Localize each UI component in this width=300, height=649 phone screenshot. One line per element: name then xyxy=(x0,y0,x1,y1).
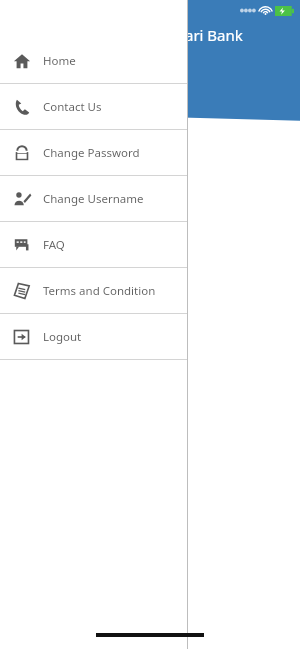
staticText: Logout xyxy=(43,329,82,345)
staticText: PARSHOTAMBHAI SONDARVA xyxy=(16,95,120,105)
button[interactable]: FAQ xyxy=(0,222,188,267)
staticText: Change Password xyxy=(43,145,140,161)
staticText: Detailed Statement xyxy=(126,309,175,337)
staticText: Amreli Nagrik Sahakari Bank xyxy=(42,25,243,45)
staticText: AMITKUMAR xyxy=(16,83,61,93)
button[interactable]: Contact Us xyxy=(0,84,188,129)
staticText: FAQ xyxy=(43,237,65,253)
staticText: Terms and Condition xyxy=(43,283,156,299)
button[interactable]: Change Username xyxy=(0,176,188,221)
button[interactable]: Fixed Deposit xyxy=(0,377,300,445)
button[interactable]: Change Password xyxy=(0,130,188,175)
staticText: Contact Us xyxy=(43,99,102,115)
button[interactable]: Terms and Condition xyxy=(0,268,188,313)
staticText: Welcome, xyxy=(16,56,94,79)
button[interactable]: Home xyxy=(0,38,188,83)
button[interactable]: Detailed Statement xyxy=(0,255,300,337)
staticText: Operative A/C xyxy=(117,199,183,213)
staticText: Change Username xyxy=(43,191,144,207)
button[interactable]: Operative A/C xyxy=(0,145,300,213)
button[interactable]: Logout xyxy=(0,314,188,359)
staticText: Home xyxy=(43,53,76,69)
